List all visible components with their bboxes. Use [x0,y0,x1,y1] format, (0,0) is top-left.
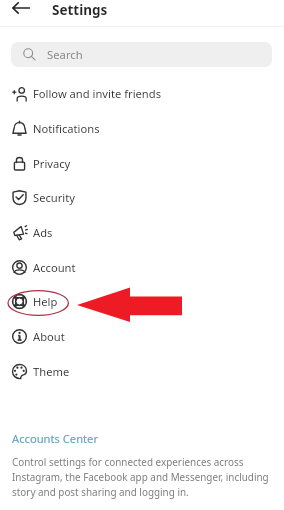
staticText: Account [33,260,76,275]
button[interactable]: Accounts Center [12,431,99,446]
button[interactable]: Privacy [0,146,284,181]
button[interactable]: Ads [0,215,284,250]
button[interactable]: Account [0,250,284,285]
staticText: About [33,329,65,344]
staticText: Help [33,294,58,309]
button[interactable]: Security [0,180,284,215]
staticText: Search [47,47,83,62]
staticText: Theme [33,364,70,379]
staticText: Settings [52,1,108,19]
staticText: Privacy [33,156,71,171]
button[interactable]: Theme [0,354,284,389]
staticText: Security [33,190,75,205]
staticText: Follow and invite friends [33,86,162,101]
staticText: Notifications [33,121,100,136]
button[interactable]: Notifications [0,111,284,146]
button[interactable]: About [0,319,284,354]
staticText: Control settings for connected experienc… [12,455,278,499]
staticText: Ads [33,225,53,240]
button[interactable]: Follow and invite friends [0,76,284,111]
button[interactable]: Search [11,42,272,67]
button[interactable]: Back [6,0,36,23]
button[interactable]: Help [0,284,284,319]
